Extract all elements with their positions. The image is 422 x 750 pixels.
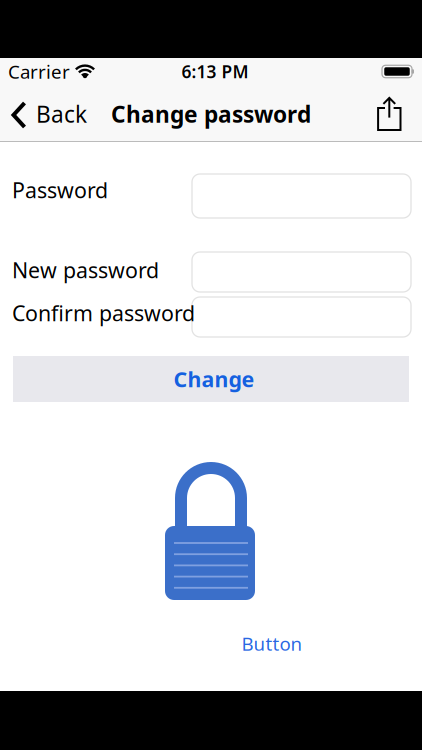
button[interactable]: Back [0, 98, 87, 128]
button[interactable]: Confirm password [192, 297, 411, 337]
staticText: 6:13 PM [181, 60, 248, 83]
staticText: Button [241, 631, 302, 656]
staticText: Change [173, 365, 254, 393]
staticText: Carrier [8, 59, 70, 84]
staticText: Confirm password [12, 299, 195, 327]
button[interactable]: New password [192, 252, 411, 292]
button[interactable]: Change [13, 356, 409, 402]
button[interactable]: Password [192, 174, 411, 218]
staticText: New password [12, 256, 159, 284]
button[interactable]: Button [241, 631, 302, 656]
button[interactable]: Share [377, 95, 422, 131]
staticText: Change password [111, 99, 311, 129]
staticText: Back [36, 99, 87, 129]
staticText: Password [12, 176, 108, 204]
